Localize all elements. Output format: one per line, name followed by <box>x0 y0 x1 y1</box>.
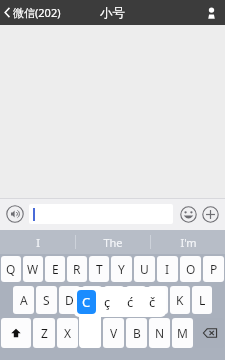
staticText: X <box>64 325 72 341</box>
staticText: K <box>176 292 184 308</box>
staticText: ç <box>104 293 111 311</box>
staticText: E <box>52 261 59 277</box>
button[interactable]: č <box>141 287 163 317</box>
staticText: T <box>96 261 103 277</box>
staticText: H <box>132 292 141 308</box>
staticText: I <box>36 235 40 250</box>
button[interactable]: Q <box>1 256 21 282</box>
button[interactable]: D <box>59 286 80 314</box>
button[interactable]: M <box>172 318 193 348</box>
button[interactable]: Z <box>33 318 55 348</box>
button[interactable]: J <box>148 286 168 314</box>
staticText: D <box>65 292 74 308</box>
button[interactable]: U <box>134 256 155 282</box>
button[interactable]: Contact info <box>197 0 225 25</box>
staticText: L <box>199 292 206 308</box>
button[interactable]: O <box>180 256 201 282</box>
staticText: O <box>186 261 196 277</box>
button[interactable]: C <box>77 290 96 314</box>
button[interactable]: Shift <box>1 318 31 348</box>
staticText: 小号 <box>100 5 125 21</box>
button[interactable]: T <box>89 256 109 282</box>
button[interactable]: R <box>67 256 87 282</box>
button[interactable]: H <box>126 286 146 314</box>
button[interactable]: ç <box>96 287 119 317</box>
button[interactable]: 微信(202) <box>0 3 67 22</box>
button[interactable]: Y <box>111 256 132 282</box>
button[interactable] <box>29 204 173 224</box>
staticText: C <box>82 293 91 311</box>
button[interactable]: Voice input <box>5 204 25 224</box>
staticText: V <box>110 325 118 341</box>
staticText: I <box>165 261 170 277</box>
button[interactable]: I <box>0 230 75 254</box>
button[interactable]: S <box>36 286 57 314</box>
button[interactable]: I <box>157 256 178 282</box>
button[interactable]: L <box>192 286 212 314</box>
button[interactable]: ć <box>119 287 141 317</box>
staticText: B <box>133 325 141 341</box>
staticText: M <box>177 325 188 341</box>
staticText: I'm <box>180 235 197 250</box>
button[interactable]: B <box>126 318 147 348</box>
staticText: Q <box>6 261 16 277</box>
staticText: F <box>89 292 96 308</box>
button[interactable]: W <box>23 256 43 282</box>
staticText: R <box>73 261 81 277</box>
staticText: 微信(202) <box>13 5 61 20</box>
button[interactable]: A <box>13 286 34 314</box>
button[interactable]: F <box>82 286 102 314</box>
staticText: Z <box>41 325 48 341</box>
staticText: W <box>27 261 39 277</box>
button[interactable]: I'm <box>151 230 225 254</box>
staticText: ć <box>127 293 134 311</box>
button[interactable]: Emoji <box>178 204 198 224</box>
button[interactable]: P <box>203 256 224 282</box>
button[interactable]: Backspace <box>195 318 224 348</box>
staticText: Y <box>118 261 125 277</box>
staticText: P <box>210 261 218 277</box>
staticText: N <box>155 325 165 341</box>
button[interactable]: N <box>149 318 170 348</box>
staticText: č <box>149 293 156 311</box>
button[interactable]: More <box>200 204 220 224</box>
button[interactable]: X <box>57 318 78 348</box>
staticText: A <box>20 292 28 308</box>
button[interactable]: C <box>80 318 101 348</box>
staticText: The <box>103 235 123 250</box>
button[interactable]: G <box>104 286 124 314</box>
button[interactable]: K <box>170 286 190 314</box>
button[interactable]: V <box>103 318 124 348</box>
staticText: U <box>140 261 149 277</box>
button[interactable]: The <box>76 230 150 254</box>
button[interactable]: E <box>45 256 65 282</box>
staticText: S <box>43 292 50 308</box>
